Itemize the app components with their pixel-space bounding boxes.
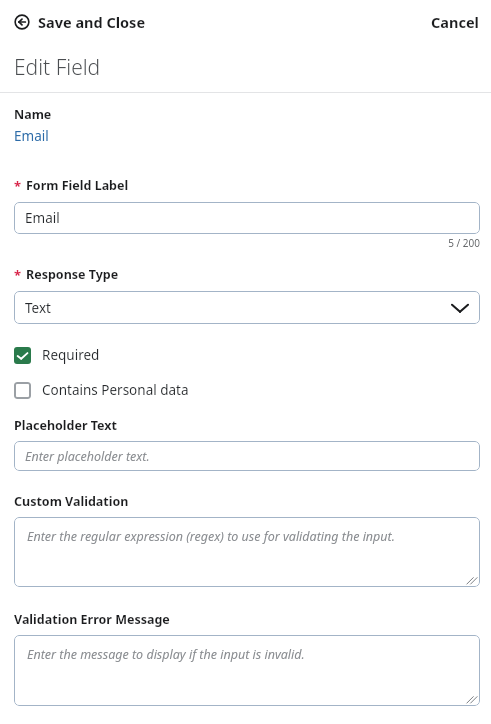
button[interactable]: Enter the message to display if the inpu… [14,635,480,706]
staticText: Form Field Label [26,177,129,194]
button[interactable]: Response Type dropdown [14,291,480,324]
other: Save and Close [14,14,30,30]
staticText: Enter placeholder text. [25,448,150,465]
staticText: 5 / 200 [448,236,480,250]
staticText: Custom Validation [14,493,129,510]
staticText: Save and Close [38,12,146,32]
button[interactable]: Save and Close [0,6,156,38]
staticText: * [14,177,22,195]
button[interactable]: Enter placeholder text. [14,441,480,471]
staticText: * [14,266,22,284]
staticText: Edit Field [14,53,101,82]
staticText: Required [42,346,100,364]
staticText: Response Type [26,266,119,283]
staticText: Contains Personal data [42,381,189,399]
staticText: Text [25,299,51,317]
staticText: Cancel [431,12,479,32]
staticText: Validation Error Message [14,611,170,628]
staticText: Email [14,127,49,145]
staticText: Placeholder Text [14,417,117,434]
button[interactable]: Required [0,344,112,366]
button[interactable]: Contains Personal data [0,379,201,401]
button[interactable]: Cancel [419,6,491,38]
staticText: Name [14,106,52,123]
button[interactable]: Enter the regular expression (regex) to … [14,517,480,587]
staticText: Enter the regular expression (regex) to … [27,528,395,545]
button[interactable]: Email [14,202,480,234]
staticText: Email [25,209,60,227]
staticText: Enter the message to display if the inpu… [27,646,305,663]
button[interactable]: Email [14,127,49,145]
